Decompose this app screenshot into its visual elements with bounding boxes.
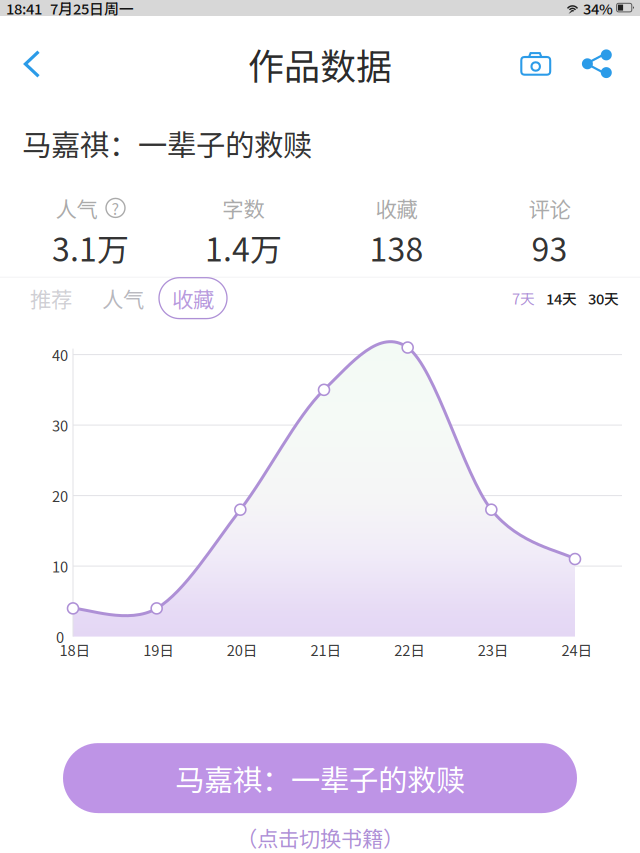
staticText: 人气 bbox=[55, 192, 97, 223]
staticText: 24日 bbox=[561, 639, 592, 660]
staticText: 10 bbox=[52, 555, 68, 577]
button[interactable]: 人气 bbox=[95, 276, 151, 321]
button[interactable]: 30天 bbox=[577, 279, 619, 317]
staticText: 7月25日周一 bbox=[50, 0, 134, 19]
staticText: 30 bbox=[52, 414, 68, 436]
button[interactable]: 马嘉祺：一辈子的救赎 bbox=[63, 743, 577, 813]
button[interactable]: Share bbox=[568, 23, 626, 105]
staticText: 19日 bbox=[143, 639, 174, 660]
staticText: 93 bbox=[531, 224, 567, 271]
staticText: 作品数据 bbox=[248, 38, 392, 90]
staticText: 30天 bbox=[588, 287, 619, 309]
staticText: 14天 bbox=[546, 287, 577, 309]
staticText: 马嘉祺：一辈子的救赎 bbox=[175, 757, 465, 799]
staticText: 收藏 bbox=[375, 192, 417, 223]
staticText: 20 bbox=[52, 485, 68, 506]
staticText: （点击切换书籍） bbox=[236, 822, 404, 853]
button[interactable]: （点击切换书籍） bbox=[236, 813, 404, 853]
staticText: 21日 bbox=[310, 639, 341, 660]
staticText: 40 bbox=[52, 344, 68, 365]
button[interactable]: Camera bbox=[504, 23, 568, 105]
button[interactable]: Back bbox=[0, 23, 64, 105]
staticText: ? bbox=[111, 196, 119, 219]
staticText: 20日 bbox=[227, 639, 258, 660]
button[interactable]: 推荐 bbox=[23, 276, 79, 321]
staticText: 字数 bbox=[222, 192, 264, 223]
button[interactable]: 14天 bbox=[535, 279, 577, 317]
staticText: 7天 bbox=[512, 287, 535, 309]
staticText: 34% bbox=[583, 0, 613, 19]
staticText: 0 bbox=[56, 626, 64, 647]
button[interactable]: 收藏 bbox=[159, 278, 227, 319]
staticText: 1.4万 bbox=[205, 224, 282, 271]
staticText: 马嘉祺：一辈子的救赎 bbox=[22, 122, 312, 164]
staticText: 18:41 bbox=[6, 0, 42, 19]
staticText: 收藏 bbox=[172, 283, 214, 314]
staticText: 22日 bbox=[394, 639, 425, 660]
staticText: 3.1万 bbox=[52, 224, 129, 271]
staticText: 推荐 bbox=[30, 283, 72, 314]
button[interactable]: 7天 bbox=[512, 279, 535, 317]
staticText: 人气 bbox=[102, 283, 144, 314]
staticText: 18日 bbox=[59, 639, 90, 660]
staticText: 评论 bbox=[528, 192, 570, 223]
staticText: 138 bbox=[369, 224, 423, 271]
staticText: 23日 bbox=[478, 639, 509, 660]
